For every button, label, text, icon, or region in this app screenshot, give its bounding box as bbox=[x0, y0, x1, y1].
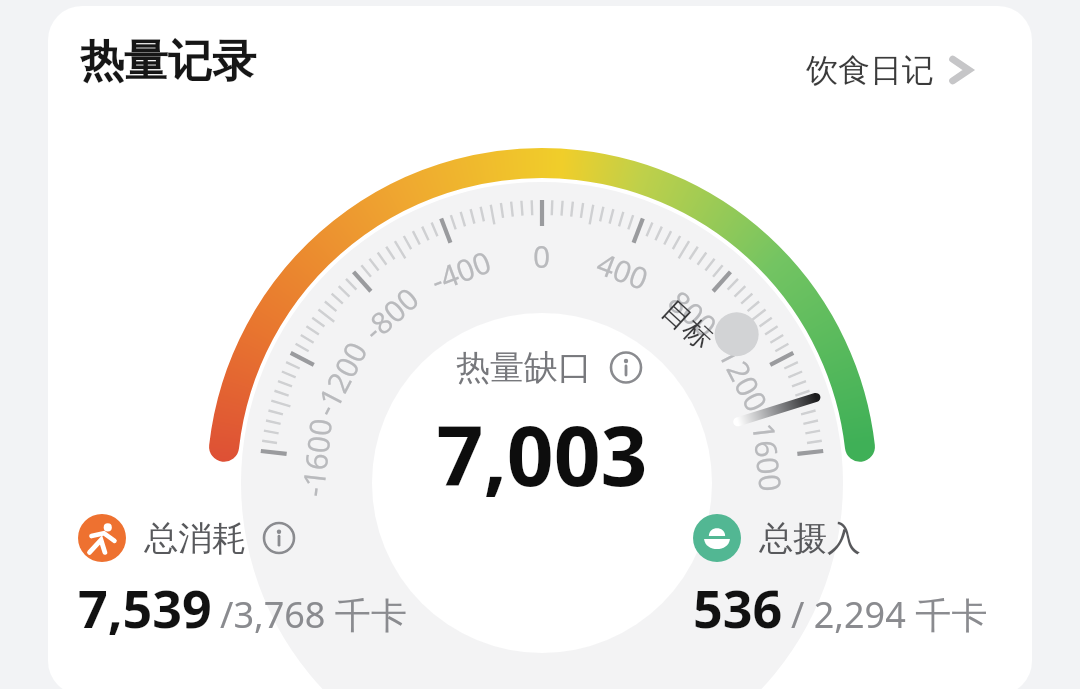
button[interactable] bbox=[800, 46, 980, 94]
button[interactable] bbox=[693, 508, 1032, 658]
button[interactable]: Info bbox=[78, 508, 498, 658]
button[interactable] bbox=[78, 34, 258, 89]
other: Info bbox=[262, 521, 296, 555]
